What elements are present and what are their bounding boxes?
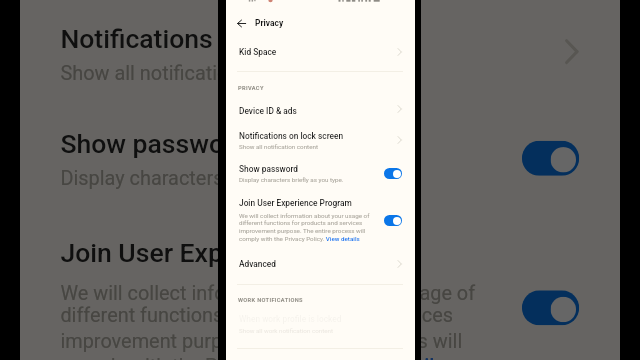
staticText: Show all notification content	[239, 143, 318, 150]
staticText: Show all work notification content	[239, 327, 334, 334]
button[interactable]: Privacy	[255, 15, 295, 31]
staticText: Device ID & ads	[239, 106, 297, 116]
staticText: Join User Experience Program	[239, 198, 352, 208]
staticText: Display characters briefly as you type.	[60, 166, 395, 188]
staticText: Privacy	[255, 18, 284, 28]
staticText: PRIVACY	[238, 85, 264, 92]
staticText: Join User Experience Program	[60, 236, 420, 268]
staticText: Notifications on lock screen	[60, 23, 395, 55]
button[interactable]: Show password toggle	[384, 168, 402, 179]
staticText: Show all notification content	[60, 61, 312, 83]
staticText: Show password	[239, 164, 298, 174]
button[interactable]: Join User Experience Program	[226, 192, 415, 247]
button[interactable]: Show password	[226, 158, 415, 186]
staticText: We will collect information about your u…	[60, 281, 496, 360]
button[interactable]: Notifications on lock screen	[226, 125, 415, 153]
staticText: Notifications on lock screen	[239, 131, 344, 141]
staticText: Advanced	[239, 259, 276, 269]
staticText: Display characters briefly as you type.	[239, 176, 344, 183]
button[interactable]: Device ID & ads	[226, 100, 415, 119]
button[interactable]: Back	[233, 15, 249, 31]
button[interactable]: Join User Experience Program toggle	[384, 215, 402, 226]
staticText: Kid Space	[239, 47, 277, 57]
staticText: WORK NOTIFICATIONS	[238, 297, 303, 304]
button[interactable]: Kid Space	[226, 40, 415, 62]
staticText: Show password	[60, 128, 248, 160]
staticText: We will collect information about your u…	[239, 212, 376, 243]
button[interactable]: Advanced	[226, 252, 415, 274]
